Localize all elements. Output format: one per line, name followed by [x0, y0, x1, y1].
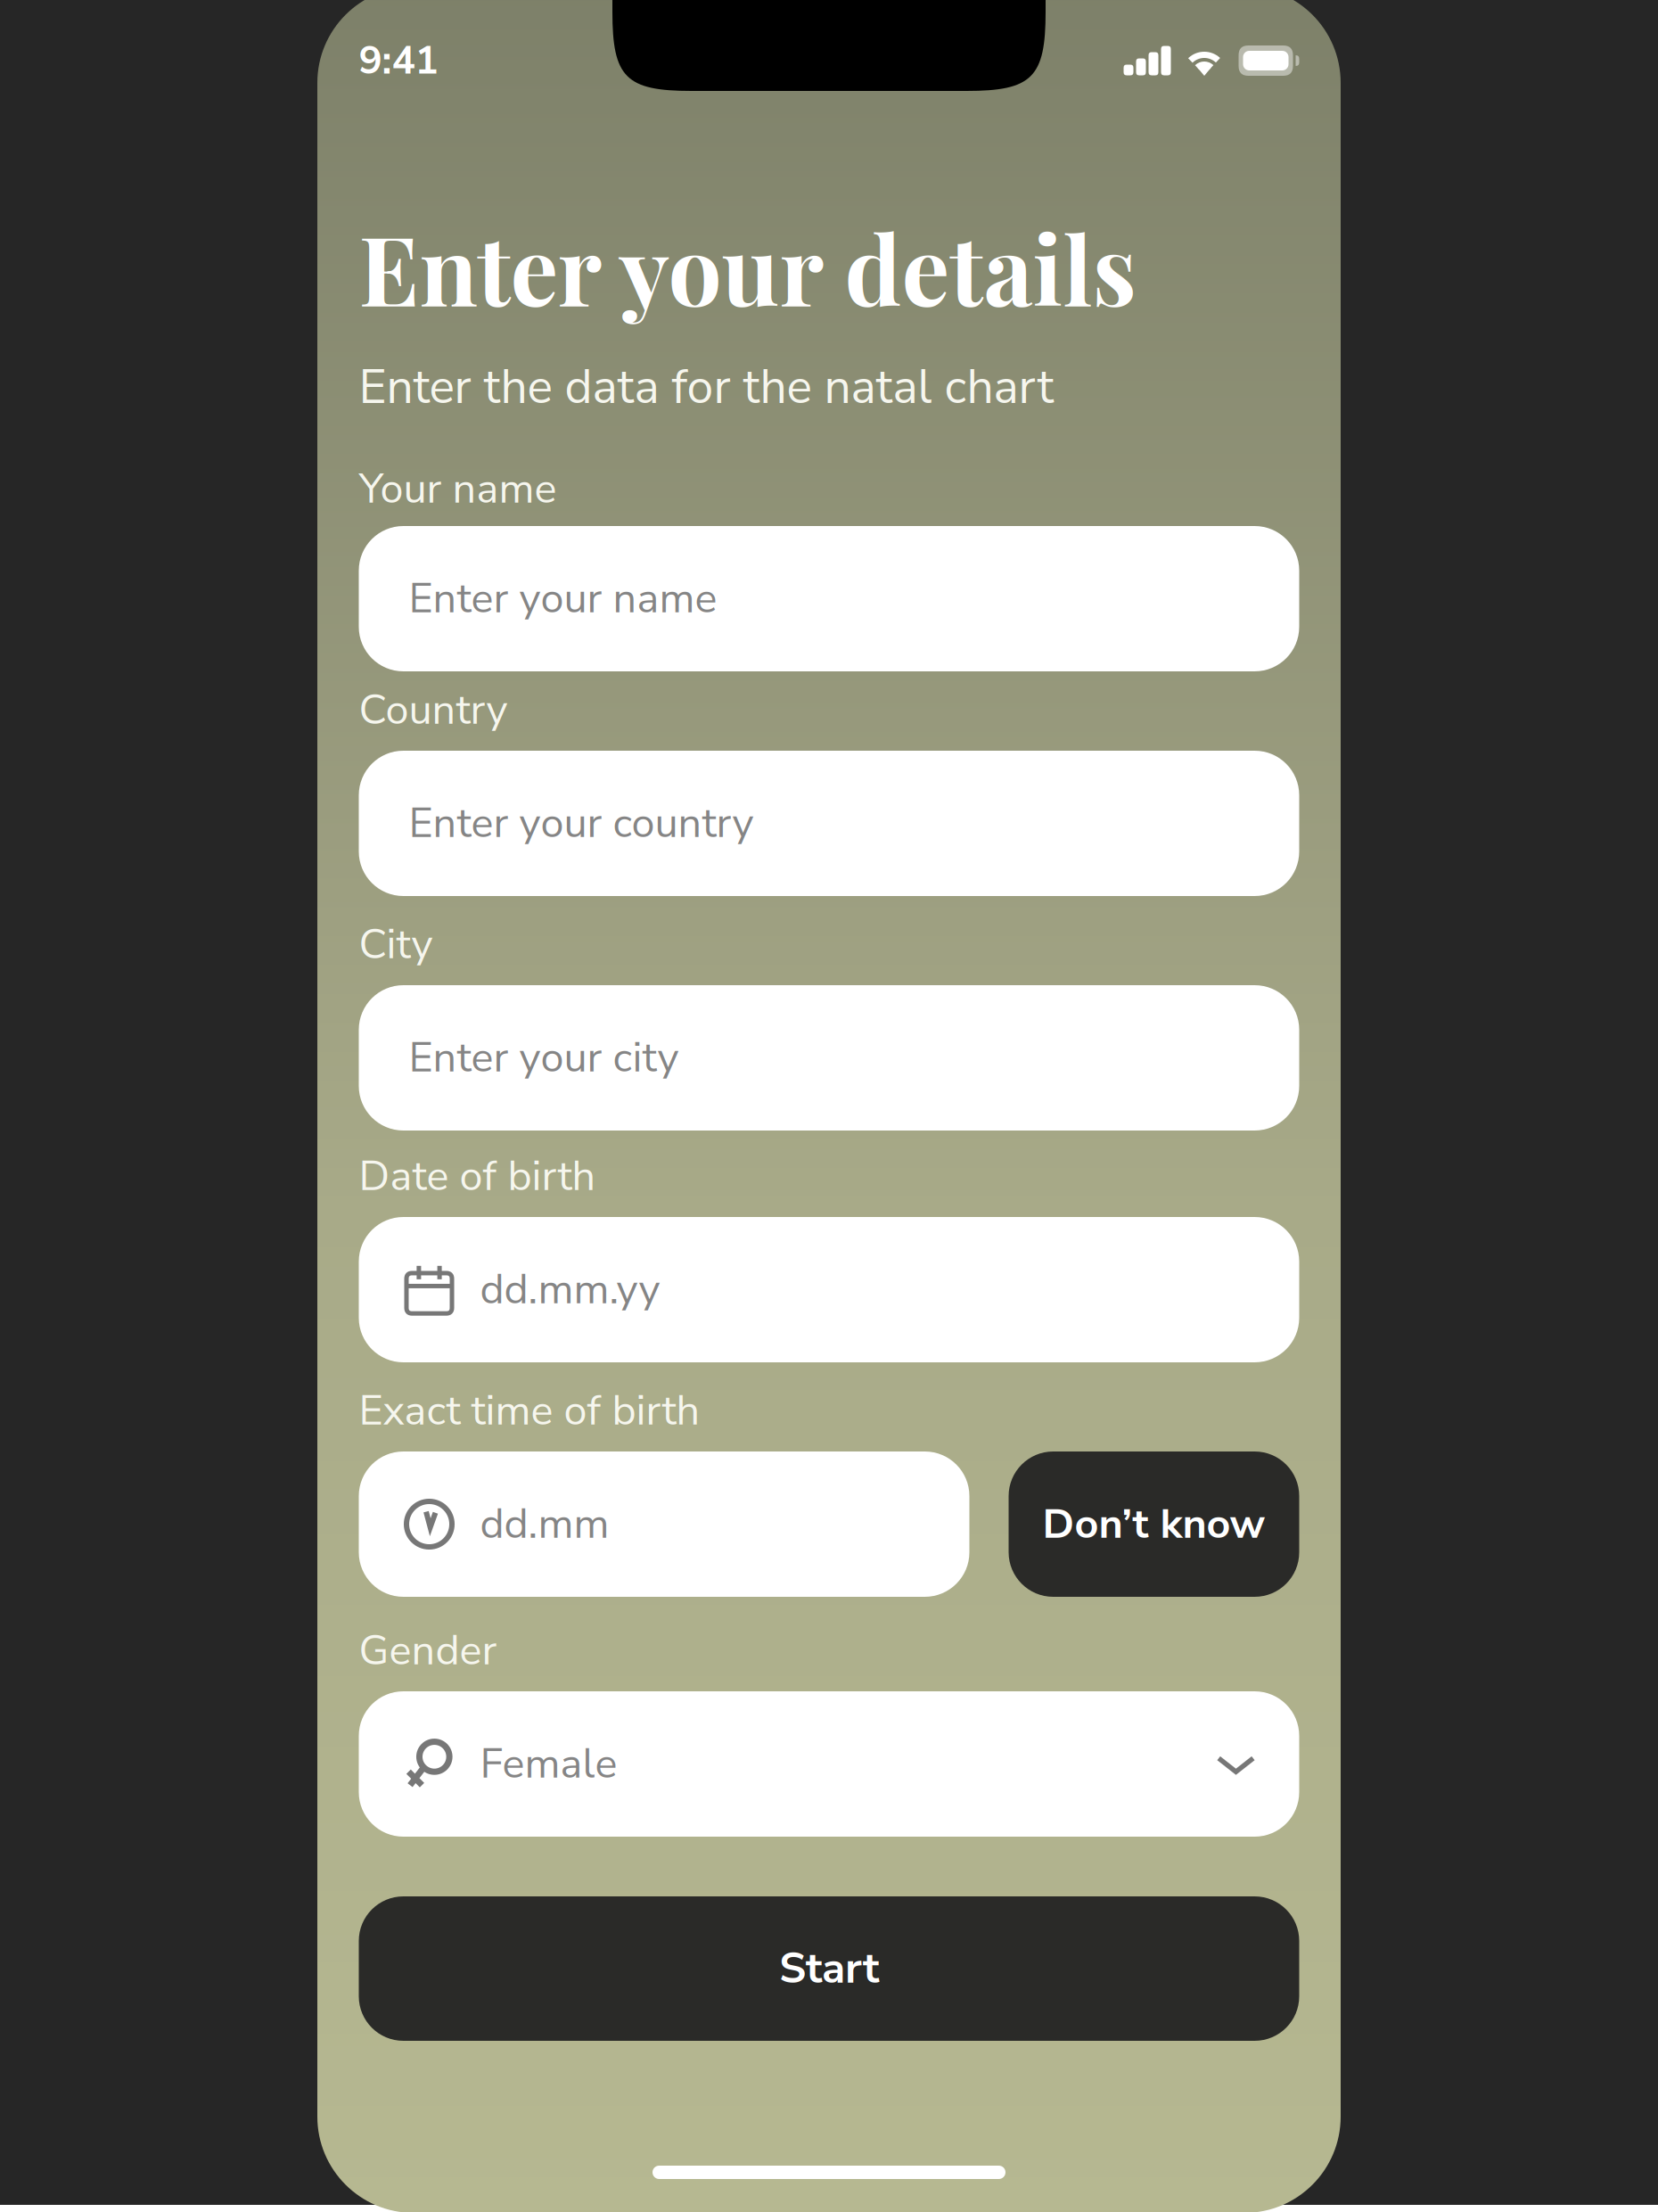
staticText: Don’t know: [1042, 1496, 1265, 1553]
staticText: 9:41: [359, 34, 438, 87]
staticText: Enter your name: [409, 570, 717, 627]
staticText: Your name: [359, 461, 557, 517]
button[interactable]: Start: [359, 1896, 1299, 2041]
staticText: Female: [480, 1736, 617, 1792]
staticText: Gender: [359, 1622, 497, 1679]
staticText: Enter your city: [409, 1030, 679, 1086]
staticText: Start: [779, 1939, 879, 1998]
staticText: Date of birth: [359, 1148, 596, 1205]
staticText: dd.mm.yy: [480, 1261, 660, 1318]
button[interactable]: dd.mm: [359, 1451, 969, 1597]
staticText: Exact time of birth: [359, 1383, 700, 1439]
staticText: City: [359, 916, 433, 973]
staticText: Country: [359, 682, 508, 739]
button[interactable]: Female: [359, 1691, 1299, 1837]
staticText: Enter the data for the natal chart: [359, 355, 1054, 420]
button[interactable]: Enter your country: [359, 751, 1299, 896]
staticText: Enter your country: [409, 795, 754, 852]
button[interactable]: Enter your name: [359, 526, 1299, 671]
button[interactable]: Enter your city: [359, 985, 1299, 1131]
button[interactable]: dd.mm.yy: [359, 1217, 1299, 1362]
staticText: dd.mm: [480, 1496, 609, 1553]
staticText: Enter your details: [359, 204, 1136, 330]
button[interactable]: Don’t know: [1009, 1451, 1299, 1597]
